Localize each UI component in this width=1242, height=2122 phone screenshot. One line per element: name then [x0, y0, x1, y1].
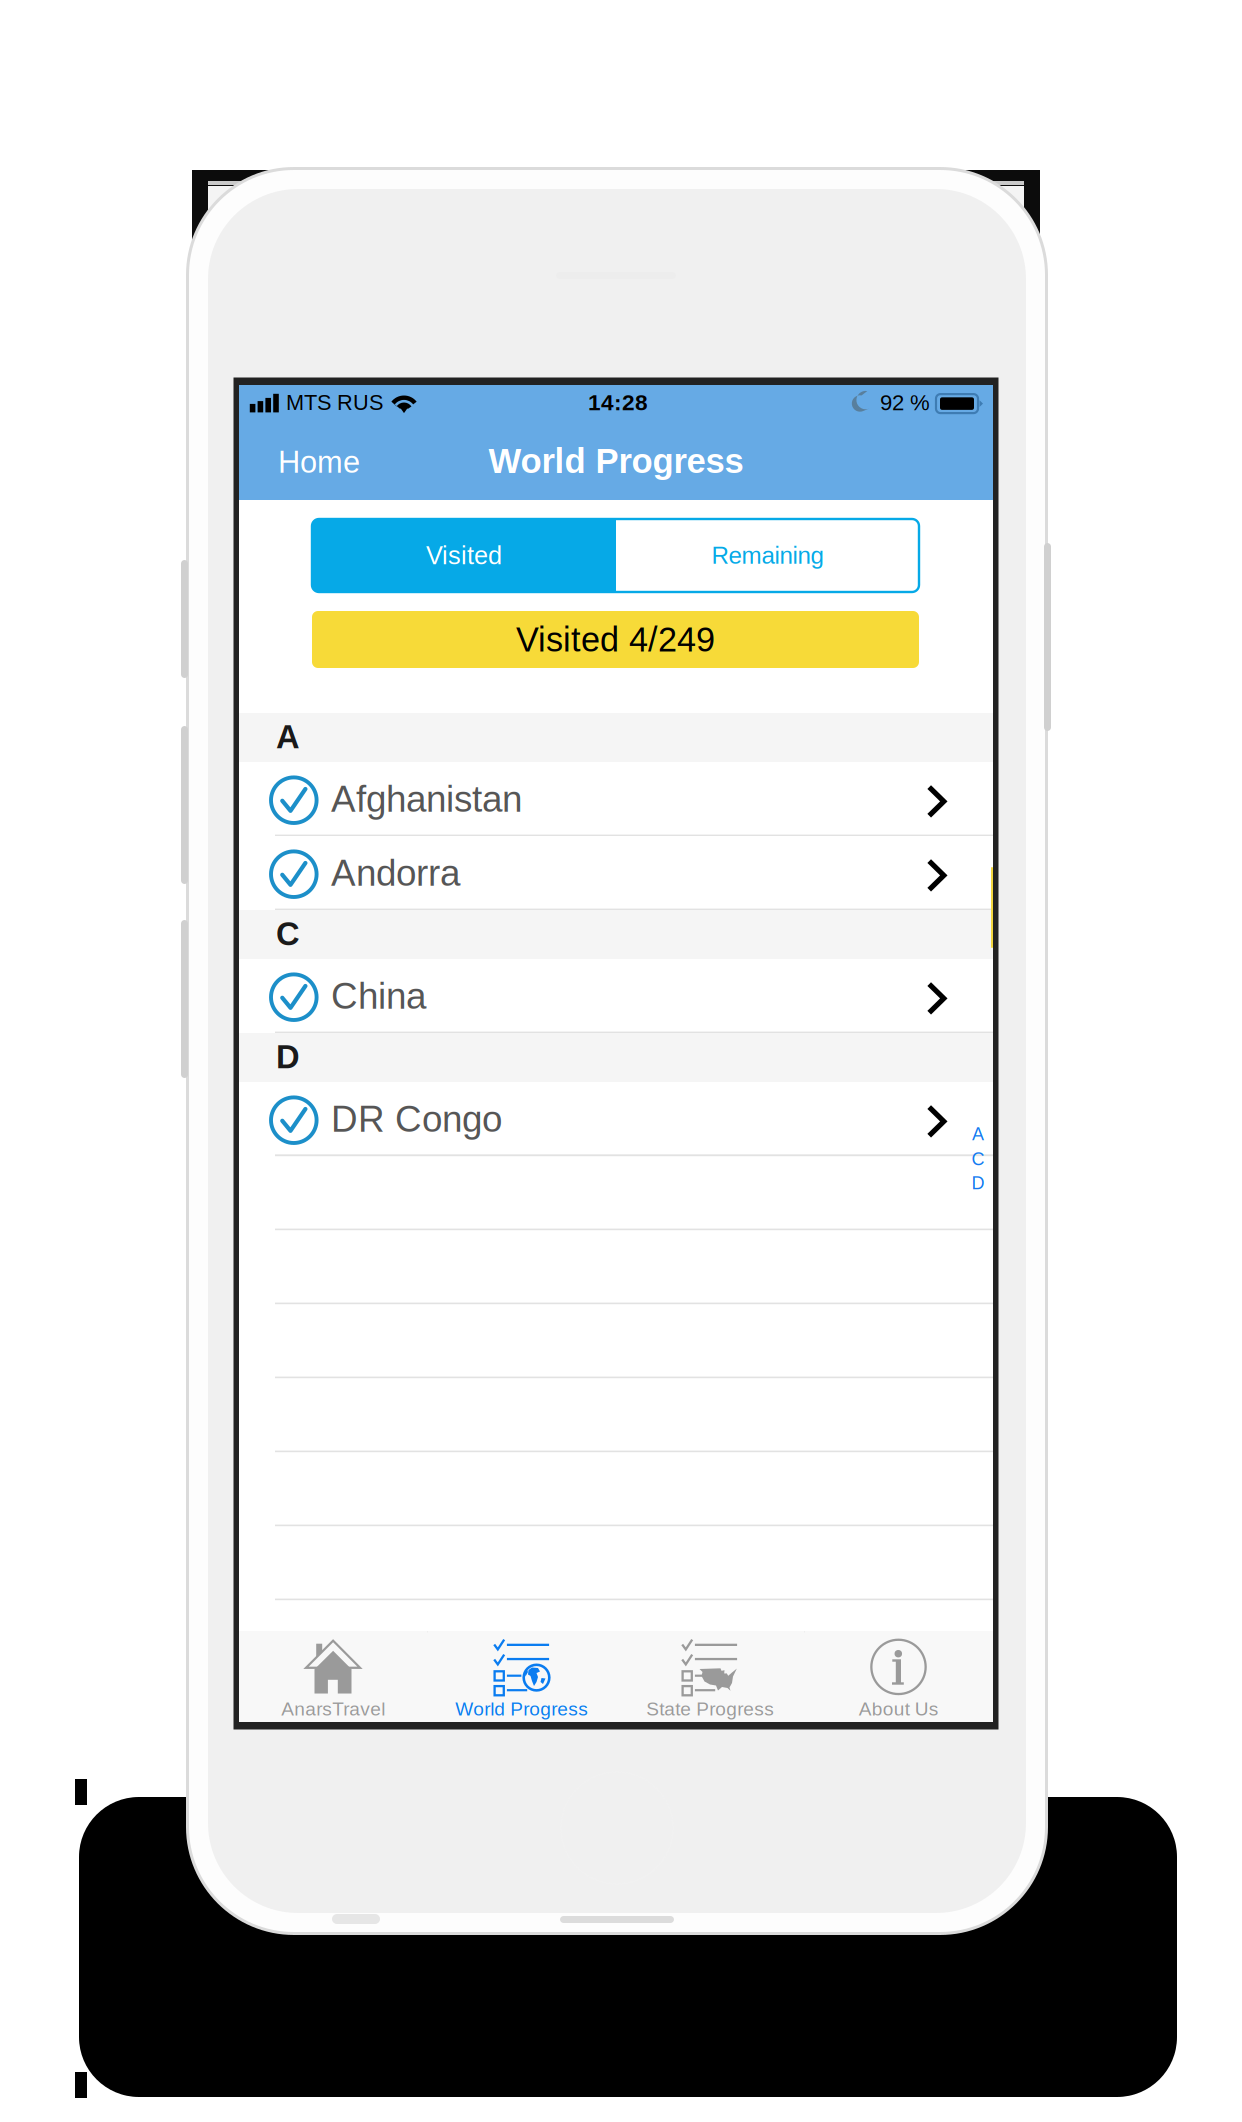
button[interactable]: Afghanistan	[239, 762, 993, 836]
staticText: C	[276, 916, 300, 952]
staticText: Visited 4/249	[516, 620, 715, 659]
staticText: C	[971, 1149, 984, 1169]
staticText: 14:28	[588, 390, 648, 415]
button[interactable]: DR Congo	[239, 1082, 993, 1156]
staticText: D	[276, 1039, 300, 1075]
button[interactable]: About Us	[804, 1631, 993, 1722]
button[interactable]: Home	[239, 424, 399, 499]
button[interactable]: Remaining	[622, 521, 912, 590]
staticText: MTS RUS	[286, 390, 383, 415]
staticText: Home	[278, 445, 360, 479]
staticText: Remaining	[711, 542, 823, 569]
staticText: World Progress	[488, 442, 743, 480]
staticText: DR Congo	[331, 1098, 502, 1139]
staticText: D	[971, 1173, 984, 1193]
button[interactable]: Visited	[312, 519, 616, 592]
button[interactable]: Andorra	[239, 836, 993, 910]
button[interactable]: AnarsTravel	[239, 1631, 427, 1722]
button[interactable]: China	[239, 959, 993, 1033]
staticText: State Progress	[646, 1698, 774, 1719]
button[interactable]: World Progress	[427, 1631, 616, 1722]
staticText: A	[276, 719, 300, 755]
staticText: Visited	[426, 541, 502, 570]
staticText: China	[331, 975, 426, 1016]
staticText: About Us	[859, 1698, 939, 1719]
staticText: Afghanistan	[331, 778, 522, 819]
staticText: Andorra	[331, 852, 460, 893]
staticText: 92 %	[880, 390, 930, 415]
staticText: AnarsTravel	[281, 1698, 385, 1719]
button[interactable]: State Progress	[616, 1631, 804, 1722]
staticText: World Progress	[455, 1698, 588, 1719]
staticText: A	[972, 1124, 984, 1144]
button[interactable]: Visited 4/249	[312, 611, 919, 668]
